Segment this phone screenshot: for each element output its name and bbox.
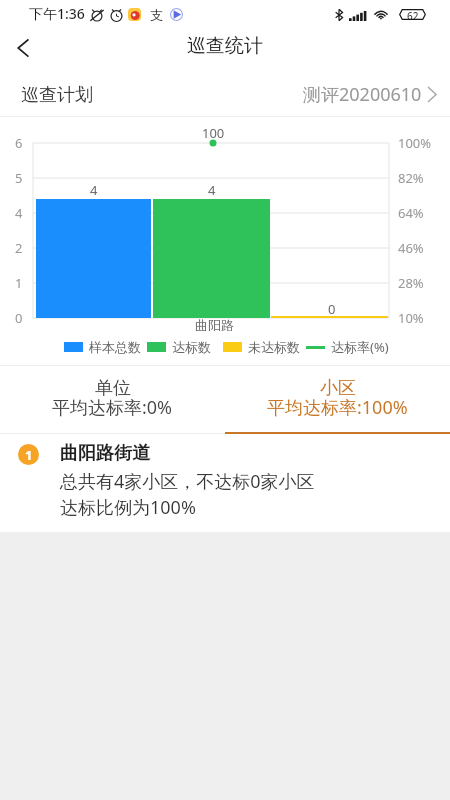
staticText: 曲阳路街道 [60,442,150,465]
staticText: 巡查统计 [187,34,263,58]
staticText: 82% [398,169,424,187]
staticText: 1 [15,274,23,292]
staticText: 4 [90,181,98,199]
staticText: 46% [398,239,424,257]
staticText: 支 [150,7,163,23]
staticText: 6 [15,134,23,152]
staticText: 达标比例为100% [60,495,196,520]
button[interactable]: Back [0,26,46,70]
staticText: 2 [15,239,23,257]
staticText: 0 [328,300,336,318]
staticText: 平均达标率:100% [267,395,408,420]
staticText: 62 [407,9,419,20]
staticText: 总共有4家小区，不达标0家小区 [60,469,315,494]
button[interactable]: 1 [0,434,450,529]
staticText: 100 [202,124,225,142]
staticText: 1 [25,446,33,464]
button[interactable]: 巡查计划 [0,70,450,116]
staticText: 小区 [320,377,356,400]
staticText: 未达标数 [248,339,300,355]
staticText: 达标数 [172,339,211,355]
staticText: 测评20200610 [303,82,422,107]
staticText: 0 [15,309,23,327]
staticText: 10% [398,309,424,327]
staticText: 下午1:36 [29,4,85,23]
staticText: 达标率(%) [331,338,389,356]
staticText: 5 [15,169,23,187]
staticText: 28% [398,274,424,292]
staticText: 巡查计划 [21,84,93,107]
staticText: 曲阳路 [195,317,234,333]
staticText: 4 [15,204,23,222]
staticText: 单位 [95,377,131,400]
staticText: 样本总数 [89,339,141,355]
button[interactable]: 单位 [0,366,225,434]
button[interactable]: 小区 [225,366,450,434]
staticText: 4 [208,181,216,199]
staticText: 64% [398,204,424,222]
staticText: 100% [398,134,432,152]
staticText: 平均达标率:0% [52,395,173,420]
